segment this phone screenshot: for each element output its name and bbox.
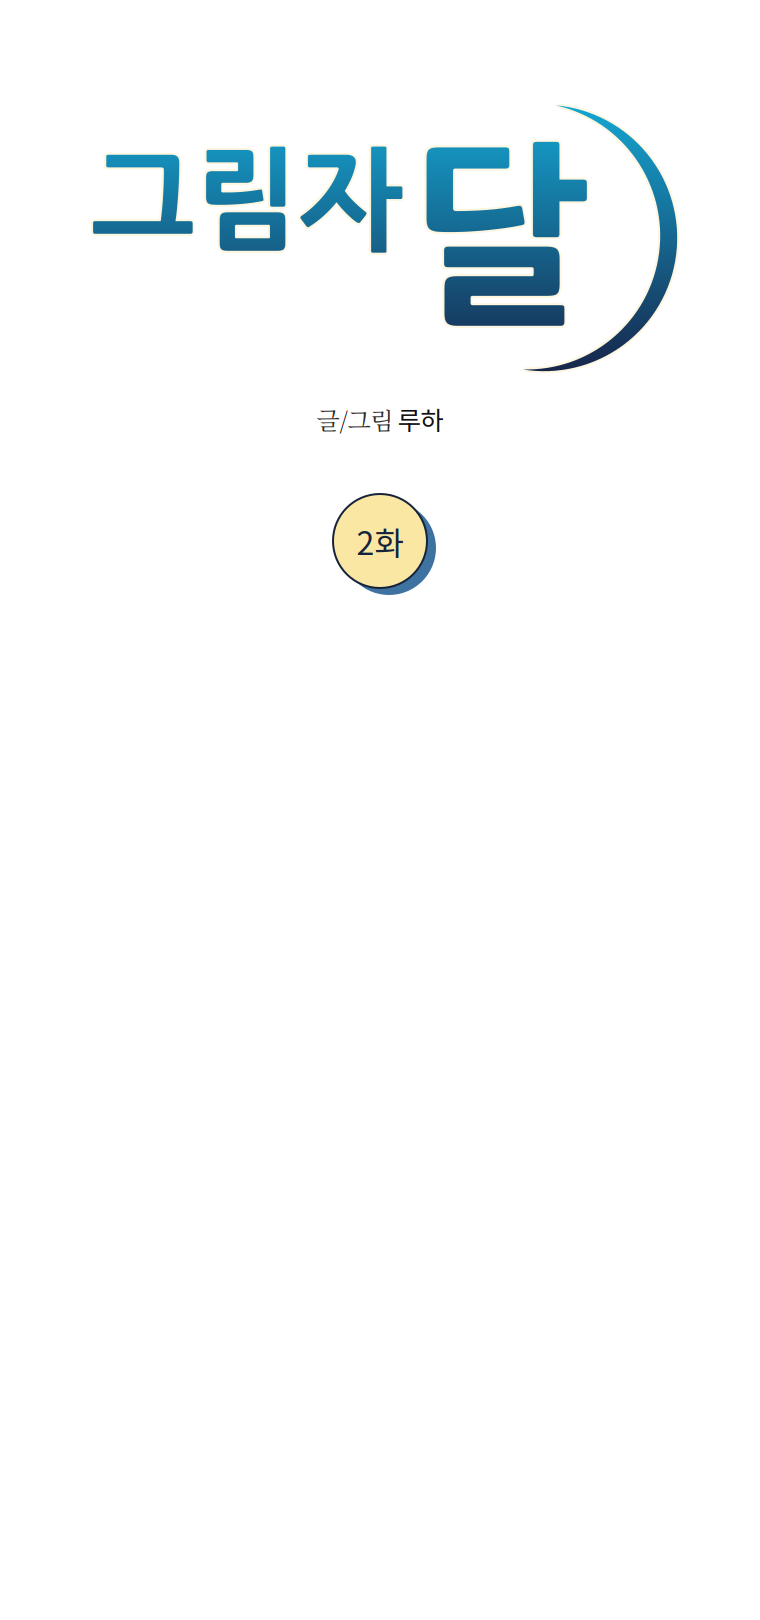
staticText: 달 bbox=[410, 142, 589, 333]
staticText: 루하 bbox=[397, 401, 443, 437]
staticText: 그림자 bbox=[93, 146, 405, 257]
staticText: 달 bbox=[407, 139, 586, 330]
staticText: 달 bbox=[410, 139, 589, 330]
staticText: 달 bbox=[411, 141, 590, 332]
staticText: 달 bbox=[409, 143, 588, 334]
staticText: 그림자 bbox=[92, 144, 404, 255]
staticText: 그림자 bbox=[91, 144, 403, 255]
staticText: 그림자 bbox=[92, 147, 404, 258]
staticText: 달 bbox=[409, 139, 588, 330]
button[interactable]: 2화 bbox=[315, 481, 445, 601]
staticText: 달 bbox=[407, 141, 586, 332]
staticText: 글/그림 bbox=[316, 402, 393, 436]
staticText: 그림자 bbox=[91, 148, 403, 259]
staticText: 그림자 bbox=[89, 146, 401, 257]
staticText: 2화 bbox=[356, 518, 403, 564]
staticText: 달 bbox=[407, 142, 586, 333]
staticText: 그림자 bbox=[89, 147, 401, 258]
staticText: 그림자 bbox=[89, 144, 401, 255]
